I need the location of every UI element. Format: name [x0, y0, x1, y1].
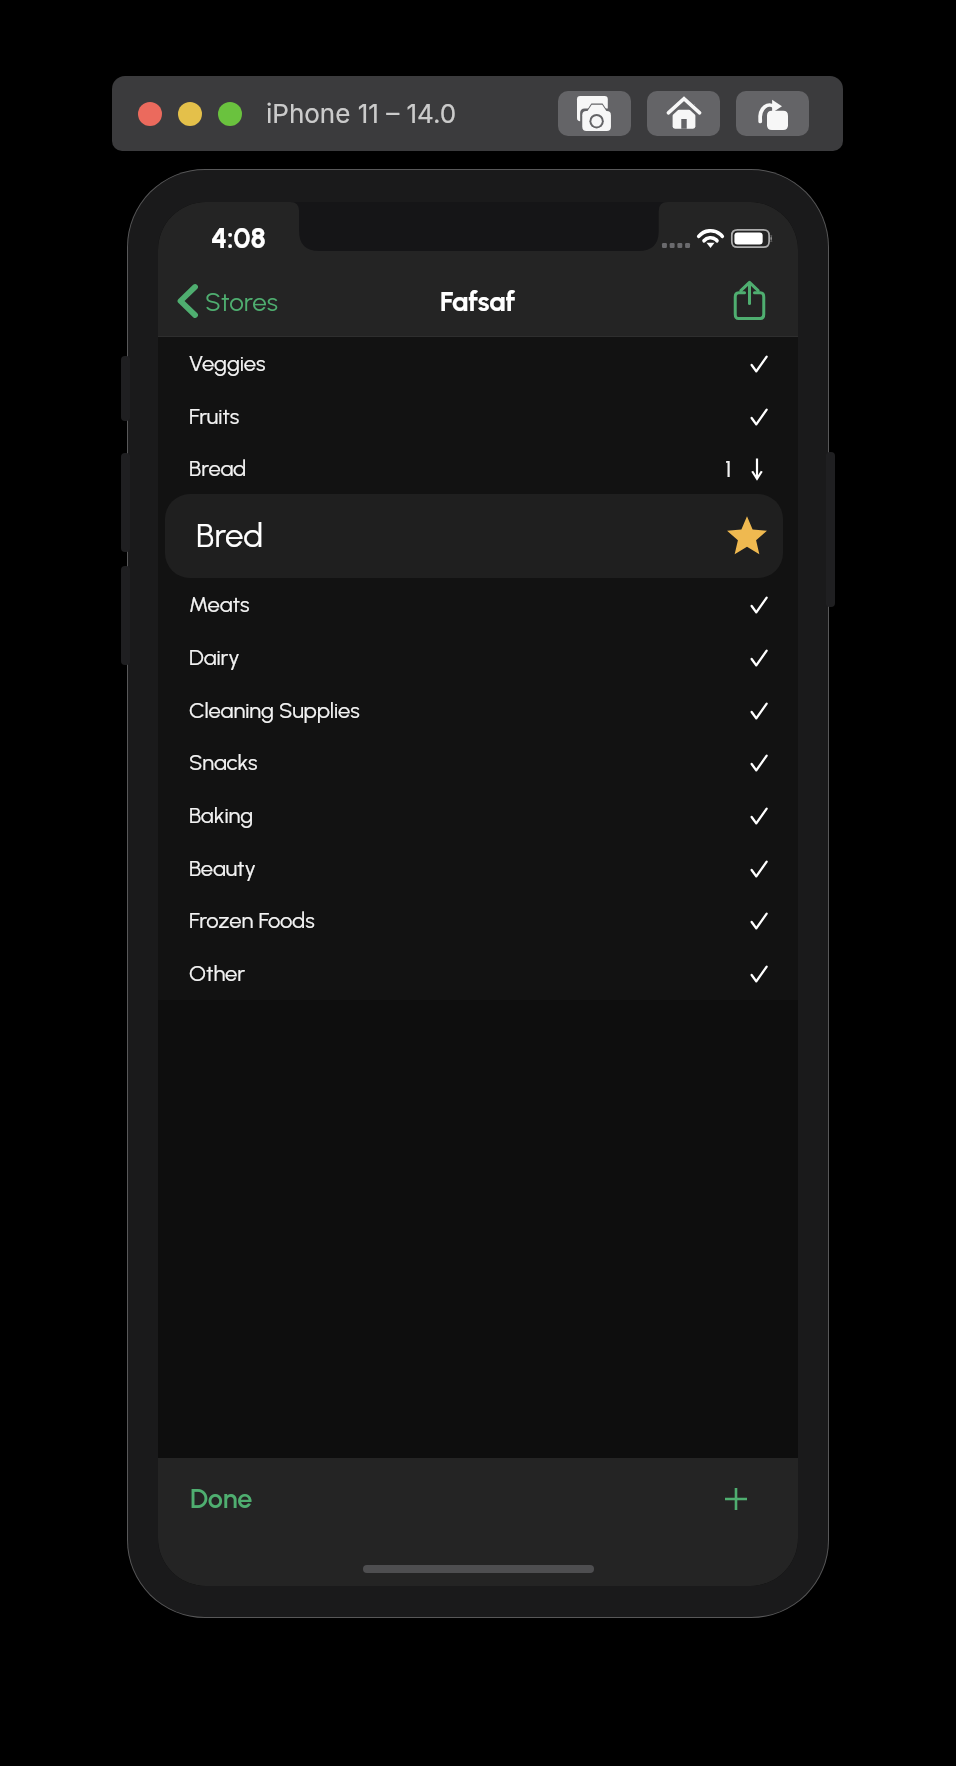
staticText: Bred: [196, 516, 264, 556]
button[interactable]: Minimize: [178, 102, 202, 126]
staticText: Snacks: [189, 749, 258, 775]
staticText: Fafsaf: [440, 285, 516, 317]
staticText: Veggies: [189, 350, 266, 376]
button[interactable]: Rotate device: [736, 91, 809, 136]
button[interactable]: Frozen Foods: [158, 894, 798, 947]
staticText: 1: [725, 454, 732, 483]
button[interactable]: Stores: [178, 266, 278, 336]
staticText: Bread: [189, 455, 247, 481]
button[interactable]: Close: [138, 102, 162, 126]
button[interactable]: Home: [647, 91, 720, 136]
staticText: Fruits: [189, 403, 240, 429]
button[interactable]: Done: [180, 1472, 263, 1524]
button[interactable]: Add item: [708, 1471, 764, 1527]
button[interactable]: Bread: [158, 442, 798, 495]
staticText: Dairy: [189, 644, 240, 670]
staticText: Cleaning Supplies: [189, 697, 360, 723]
button[interactable]: Maximize: [218, 102, 242, 126]
button[interactable]: Bred: [165, 494, 783, 578]
button[interactable]: Veggies: [158, 337, 798, 390]
button[interactable]: Other: [158, 947, 798, 1000]
button[interactable]: Dairy: [158, 631, 798, 684]
button[interactable]: Meats: [158, 578, 798, 631]
staticText: Frozen Foods: [189, 907, 315, 933]
button[interactable]: Beauty: [158, 842, 798, 895]
staticText: Done: [190, 1482, 253, 1514]
button[interactable]: Favourite: [724, 513, 770, 559]
staticText: 4:08: [211, 221, 266, 254]
staticText: iPhone 11 – 14.0: [266, 98, 457, 129]
button[interactable]: Screenshot: [558, 91, 631, 136]
staticText: Meats: [189, 591, 250, 617]
button[interactable]: Fruits: [158, 390, 798, 443]
staticText: Beauty: [189, 855, 256, 881]
button[interactable]: Share: [718, 269, 780, 331]
staticText: Other: [189, 960, 246, 986]
button[interactable]: Cleaning Supplies: [158, 684, 798, 737]
staticText: Baking: [189, 802, 254, 828]
staticText: Stores: [205, 286, 278, 317]
button[interactable]: Baking: [158, 789, 798, 842]
button[interactable]: Snacks: [158, 736, 798, 789]
